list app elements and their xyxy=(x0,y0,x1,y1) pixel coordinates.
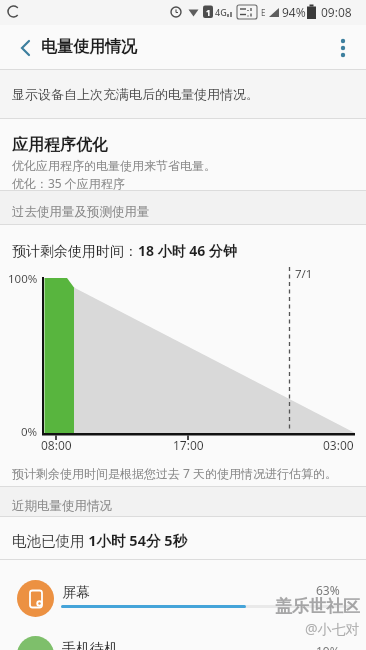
staticText: 手机待机 xyxy=(62,640,118,650)
staticText: 预计剩余使用时间是根据您过去 7 天的使用情况进行估算的。 xyxy=(12,465,338,481)
staticText: 优化应用程序的电量使用来节省电量。 xyxy=(12,158,216,173)
button[interactable]: 应用程序优化 xyxy=(0,118,366,190)
staticText: 屏幕 xyxy=(62,584,90,602)
staticText: 17:00 xyxy=(173,437,204,453)
staticText: 7/1 xyxy=(295,266,313,282)
button[interactable] xyxy=(6,28,44,67)
staticText: 94% xyxy=(282,4,306,20)
staticText: 电量使用情况 xyxy=(41,37,137,57)
staticText: 63% xyxy=(316,582,340,598)
staticText: 09:08 xyxy=(321,4,352,20)
staticText: 03:00 xyxy=(323,437,354,453)
button[interactable]: 屏幕 xyxy=(0,562,366,618)
staticText: 预计剩余使用时间：18 小时 46 分钟 xyxy=(12,241,237,260)
staticText: 电池已使用 1小时 54分 5秒 xyxy=(12,530,187,550)
staticText: E xyxy=(261,7,266,18)
staticText: @小七对 xyxy=(305,619,360,638)
staticText: 应用程序优化 xyxy=(12,135,108,155)
button[interactable]: 手机待机 xyxy=(0,636,366,650)
staticText: 19% xyxy=(316,643,340,650)
staticText: 4G xyxy=(215,6,227,18)
staticText: 优化：35 个应用程序 xyxy=(12,175,125,190)
staticText: 近期电量使用情况 xyxy=(12,498,112,514)
button[interactable] xyxy=(326,28,360,67)
staticText: 显示设备自上次充满电后的电量使用情况。 xyxy=(12,86,259,102)
staticText: 0% xyxy=(21,424,38,440)
staticText: 1 xyxy=(206,7,211,18)
staticText: 08:00 xyxy=(41,437,72,453)
staticText: 100% xyxy=(8,271,38,287)
staticText: 过去使用量及预测使用量 xyxy=(12,204,150,220)
staticText: 盖乐世社区 xyxy=(275,596,360,617)
